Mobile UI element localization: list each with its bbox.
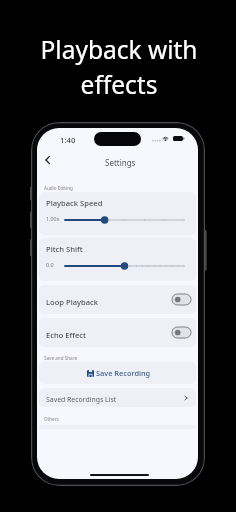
staticText: Settings <box>105 157 136 168</box>
staticText: Saved Recordings List <box>46 395 117 404</box>
staticText: 1.00x <box>46 215 60 222</box>
staticText: Audio Editing <box>44 185 73 191</box>
staticText: Save and Share <box>44 355 77 361</box>
staticText: Echo Effect <box>46 330 86 340</box>
button[interactable]: Save Recording <box>39 362 196 384</box>
button[interactable]: Echo Effect <box>39 318 196 347</box>
staticText: Others <box>44 416 59 422</box>
staticText: 1:40 <box>60 135 76 146</box>
staticText: 0.0 <box>46 261 54 268</box>
staticText: Loop Playback <box>46 297 99 307</box>
staticText: Playback with effects <box>13 33 225 101</box>
button[interactable]: Back <box>40 152 56 168</box>
button[interactable]: Loop Playback <box>39 285 196 314</box>
staticText: Playback Speed <box>46 198 103 208</box>
button[interactable]: Saved Recordings List <box>39 388 196 407</box>
staticText: Pitch Shift <box>46 244 83 254</box>
staticText: Save Recording <box>96 368 151 378</box>
